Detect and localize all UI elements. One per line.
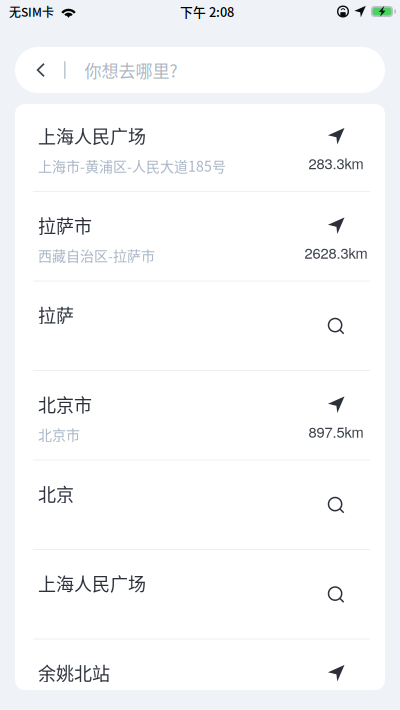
staticText: 西藏自治区-拉萨市 [38,245,155,265]
button[interactable]: 拉萨市 [15,192,385,280]
button[interactable]: 上海人民广场 [15,102,385,191]
staticText: 2628.3km [304,242,367,263]
staticText: 北京市 [38,424,80,444]
staticText: 拉萨市 [38,212,92,238]
staticText: 拉萨 [38,301,74,328]
staticText: 余姚北站 [38,659,110,686]
staticText: 无SIM卡 [9,3,54,20]
staticText: 897.5km [308,421,363,442]
button[interactable]: 北京 [15,460,385,549]
staticText: 下午 2:08 [180,2,234,21]
button[interactable]: 上海人民广场 [15,550,385,638]
button[interactable]: 余姚北站 [15,639,385,691]
button[interactable]: Back [15,48,64,91]
staticText: 你想去哪里? [85,58,178,82]
staticText: 283.3km [308,152,363,173]
button[interactable]: 你想去哪里? [85,58,178,82]
staticText: 北京 [38,480,74,507]
button[interactable]: 拉萨 [15,281,385,370]
button[interactable]: 北京市 [15,371,385,459]
staticText: 上海人民广场 [38,122,146,149]
staticText: 北京市 [38,391,92,417]
staticText: 上海人民广场 [38,570,146,596]
staticText: 上海市-黄浦区-人民大道185号 [38,156,226,176]
